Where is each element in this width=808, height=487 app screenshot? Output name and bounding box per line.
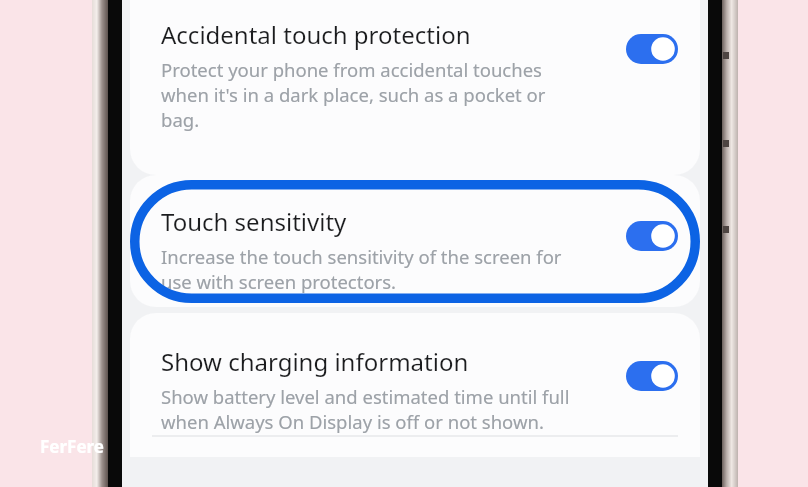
staticText: Show charging information bbox=[161, 345, 469, 378]
staticText: Protect your phone from accidental touch… bbox=[161, 57, 542, 82]
staticText: FerFere bbox=[40, 435, 104, 458]
button[interactable]: Toggle setting bbox=[626, 221, 678, 251]
staticText: Increase the touch sensitivity of the sc… bbox=[161, 244, 562, 269]
button[interactable]: Touch sensitivity bbox=[130, 175, 700, 307]
button[interactable]: Accidental touch protection bbox=[130, 0, 700, 175]
button[interactable]: Show charging information bbox=[130, 313, 700, 457]
button[interactable]: Toggle setting bbox=[626, 361, 678, 391]
staticText: Accidental touch protection bbox=[161, 18, 471, 51]
staticText: when it's in a dark place, such as a poc… bbox=[161, 82, 546, 107]
staticText: when Always On Display is off or not sho… bbox=[161, 409, 544, 434]
staticText: Show battery level and estimated time un… bbox=[161, 384, 570, 409]
staticText: Touch sensitivity bbox=[161, 205, 347, 238]
button[interactable]: Toggle setting bbox=[626, 34, 678, 64]
staticText: use with screen protectors. bbox=[161, 269, 397, 294]
staticText: bag. bbox=[161, 107, 200, 132]
